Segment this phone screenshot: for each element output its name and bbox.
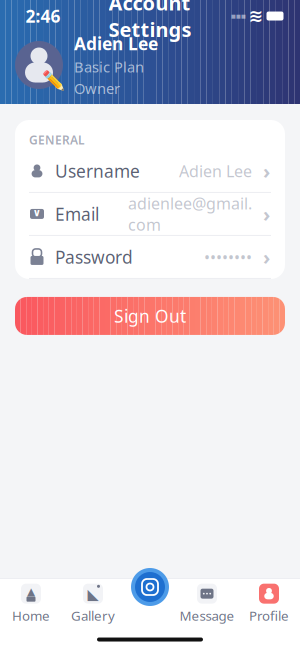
staticText: Adien Lee: [74, 32, 158, 55]
staticText: Username: [55, 159, 140, 182]
staticText: Account Settings: [108, 0, 191, 43]
button[interactable]: Profile: [238, 585, 300, 623]
staticText: 2:46: [25, 4, 60, 27]
staticText: Sign Out: [114, 304, 186, 327]
staticText: ◣: [87, 586, 98, 602]
staticText: ›: [263, 158, 270, 184]
staticText: Adien Lee: [179, 160, 252, 181]
button[interactable]: Username: [15, 150, 285, 193]
button[interactable]: Sign Out: [0, 297, 300, 335]
button[interactable]: ◣: [62, 585, 124, 623]
staticText: ▲: [27, 586, 35, 598]
staticText: ›: [263, 201, 270, 227]
staticText: Gallery: [71, 607, 115, 624]
staticText: ▪▪▪: [230, 11, 245, 21]
button[interactable]: Camera: [129, 566, 171, 608]
staticText: GENERAL: [29, 132, 85, 148]
staticText: Owner: [74, 78, 120, 98]
button[interactable]: ∨: [15, 193, 285, 236]
staticText: ›: [263, 244, 270, 270]
staticText: Basic Plan: [74, 57, 144, 76]
staticText: Password: [55, 245, 133, 268]
button[interactable]: Message: [176, 585, 238, 623]
button[interactable]: ▲: [0, 585, 62, 623]
staticText: Home: [12, 607, 50, 624]
button[interactable]: Password: [15, 236, 285, 279]
staticText: Profile: [249, 607, 289, 624]
staticText: Message: [179, 607, 234, 624]
staticText: ✏️: [42, 70, 65, 91]
staticText: ≋: [248, 6, 263, 26]
staticText: adienlee@gmail.com: [128, 193, 252, 235]
staticText: ∨: [32, 206, 41, 218]
staticText: ••••••••: [204, 246, 252, 267]
staticText: Email: [55, 202, 99, 225]
